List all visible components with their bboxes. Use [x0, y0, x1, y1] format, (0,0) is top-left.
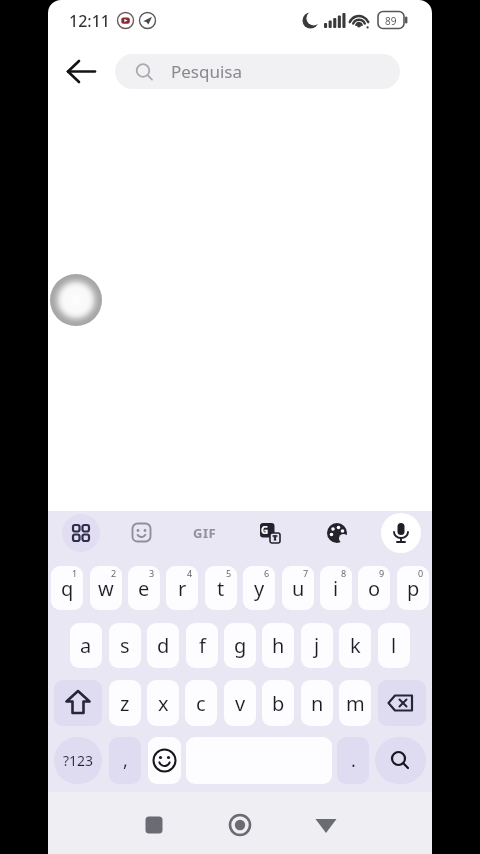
button[interactable]: o	[358, 566, 390, 610]
staticText: f	[199, 632, 206, 659]
button[interactable]: u	[282, 566, 314, 610]
button[interactable]: v	[224, 680, 256, 726]
staticText: b	[272, 690, 285, 717]
staticText: s	[120, 632, 130, 659]
staticText: o	[368, 575, 381, 602]
staticText: c	[196, 690, 206, 717]
button[interactable]: f	[186, 623, 218, 668]
staticText: a	[80, 632, 92, 659]
button[interactable]: e	[128, 566, 160, 610]
staticText: 5	[226, 567, 232, 579]
staticText: 4	[187, 567, 193, 579]
staticText: p	[407, 575, 420, 602]
button[interactable]: a	[70, 623, 102, 668]
button[interactable]: r	[166, 566, 198, 610]
staticText: e	[138, 575, 150, 602]
staticText: m	[346, 690, 365, 717]
staticText: y	[254, 575, 265, 602]
staticText: k	[350, 632, 361, 659]
staticText: 8	[341, 567, 347, 579]
button[interactable]: ?123	[54, 737, 102, 784]
staticText: ,	[123, 748, 128, 773]
staticText: n	[311, 690, 324, 717]
staticText: 2	[111, 567, 117, 579]
button[interactable]	[58, 52, 104, 92]
staticText: x	[158, 690, 169, 717]
button[interactable]	[326, 522, 348, 544]
staticText: j	[314, 632, 320, 659]
button[interactable]	[378, 680, 426, 726]
staticText: 7	[303, 567, 309, 579]
button[interactable]: .	[337, 737, 369, 784]
staticText: v	[235, 690, 246, 717]
staticText: l	[391, 632, 397, 659]
button[interactable]	[381, 513, 421, 553]
staticText: i	[333, 575, 339, 602]
button[interactable]: s	[109, 623, 141, 668]
staticText: ?123	[63, 751, 94, 770]
button[interactable]	[54, 680, 102, 726]
button[interactable]: b	[262, 680, 294, 726]
staticText: Pesquisa	[171, 60, 243, 83]
staticText: g	[234, 632, 247, 659]
staticText: h	[272, 632, 285, 659]
staticText: G	[261, 523, 269, 537]
button[interactable]: i	[320, 566, 352, 610]
staticText: d	[157, 632, 170, 659]
button[interactable]	[310, 810, 342, 842]
button[interactable]: n	[301, 680, 333, 726]
button[interactable]	[62, 514, 100, 552]
button[interactable]: ,	[109, 737, 141, 784]
button[interactable]	[138, 810, 170, 842]
staticText: r	[178, 575, 187, 602]
staticText: q	[61, 575, 74, 602]
staticText: 12:11	[69, 10, 110, 32]
staticText: w	[98, 575, 114, 602]
staticText: 0	[418, 567, 424, 579]
staticText: z	[120, 690, 130, 717]
staticText: GIF	[193, 524, 217, 542]
button[interactable]: z	[109, 680, 141, 726]
button[interactable]: Pesquisa	[115, 54, 400, 89]
staticText: 9	[379, 567, 385, 579]
button[interactable]: h	[262, 623, 294, 668]
staticText: t	[217, 575, 225, 602]
staticText: 3	[149, 567, 155, 579]
staticText: .	[351, 748, 356, 773]
button[interactable]: g	[224, 623, 256, 668]
button[interactable]: q	[51, 566, 83, 610]
staticText: 6	[264, 567, 270, 579]
button[interactable]	[131, 522, 153, 544]
button[interactable]	[375, 737, 426, 784]
button[interactable]: k	[339, 623, 371, 668]
staticText: 89	[385, 14, 397, 28]
button[interactable]: j	[301, 623, 333, 668]
button[interactable]: p	[397, 566, 429, 610]
button[interactable]: t	[205, 566, 237, 610]
button[interactable]: l	[378, 623, 410, 668]
staticText: 1	[72, 567, 78, 579]
button[interactable]	[259, 522, 281, 544]
button[interactable]: y	[243, 566, 275, 610]
button[interactable]: GIF	[193, 524, 223, 542]
button[interactable]: m	[339, 680, 371, 726]
button[interactable]: w	[90, 566, 122, 610]
button[interactable]: c	[185, 680, 217, 726]
button[interactable]	[224, 810, 256, 842]
button[interactable]: x	[147, 680, 179, 726]
staticText: u	[292, 575, 305, 602]
button[interactable]: d	[147, 623, 179, 668]
button[interactable]	[148, 737, 181, 784]
